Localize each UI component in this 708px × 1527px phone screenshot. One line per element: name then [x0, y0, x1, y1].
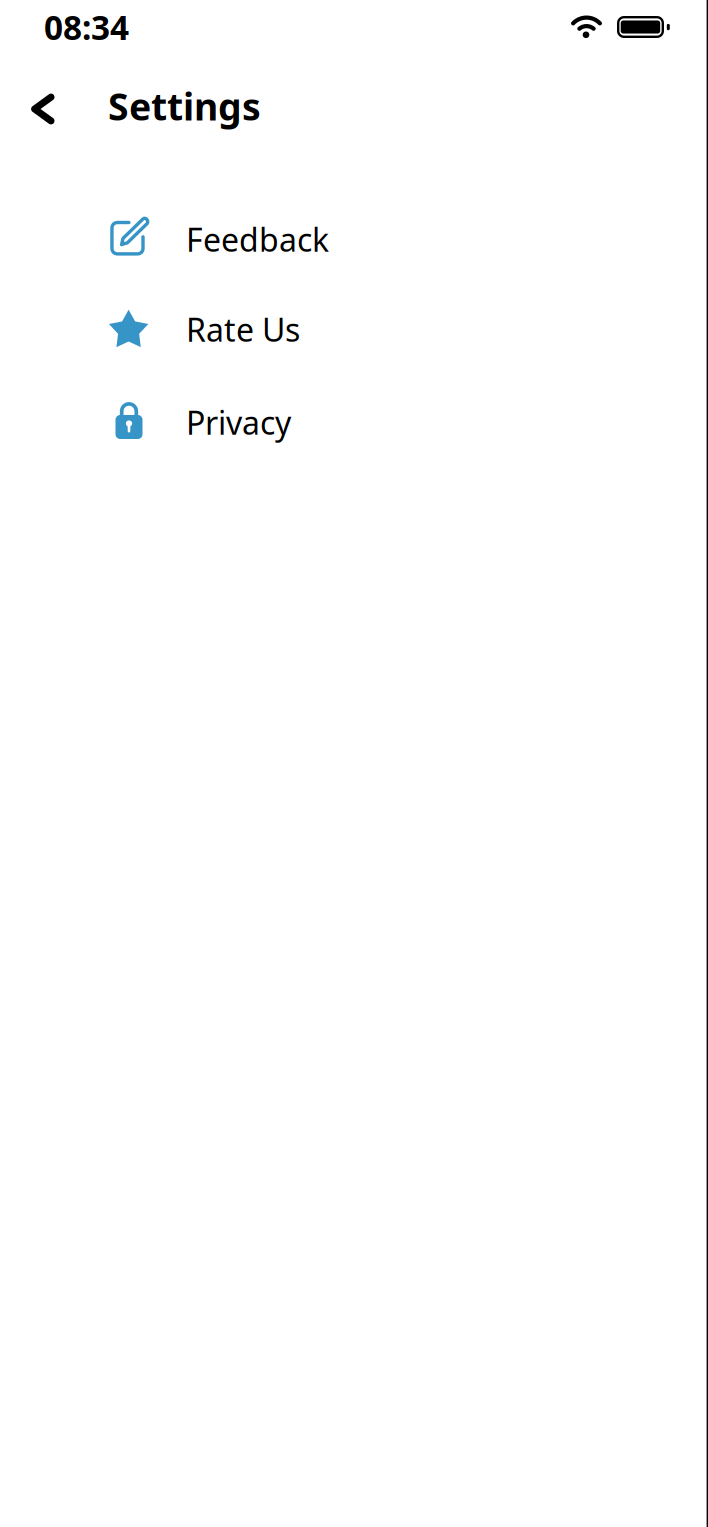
- staticText: 08:34: [44, 5, 129, 49]
- staticText: Rate Us: [186, 308, 300, 350]
- staticText: Feedback: [186, 218, 329, 260]
- button[interactable]: Rate Us: [0, 281, 708, 373]
- button[interactable]: Feedback: [0, 189, 708, 281]
- staticText: Settings: [108, 81, 261, 131]
- staticText: Privacy: [186, 401, 291, 443]
- button[interactable]: Privacy: [0, 373, 708, 465]
- button[interactable]: Back: [31, 91, 55, 126]
